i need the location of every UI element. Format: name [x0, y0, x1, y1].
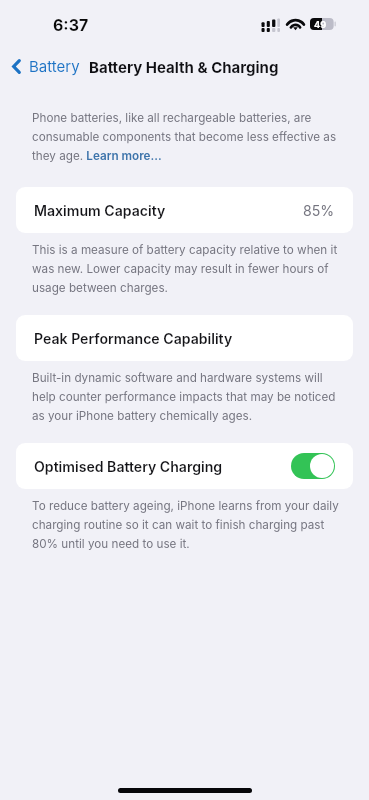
staticText: Battery Health & Charging — [89, 58, 279, 76]
staticText: Battery — [29, 57, 80, 75]
staticText: Optimised Battery Charging — [34, 458, 223, 475]
staticText: Maximum Capacity — [34, 202, 166, 219]
staticText: This is a measure of battery capacity re… — [32, 243, 345, 295]
staticText: Built-in dynamic software and hardware s… — [32, 371, 345, 423]
button[interactable]: Optimised Battery Charging — [16, 443, 353, 489]
button[interactable]: Maximum Capacity — [16, 187, 353, 233]
staticText: 85% — [303, 202, 335, 219]
button[interactable]: Battery — [8, 51, 84, 81]
staticText: Peak Performance Capability — [34, 330, 233, 347]
button[interactable]: Optimised Battery Charging toggle — [291, 453, 335, 479]
staticText: To reduce battery ageing, iPhone learns … — [32, 499, 345, 551]
staticText: 6:37 — [53, 16, 89, 35]
button[interactable]: Peak Performance Capability — [16, 315, 353, 361]
staticText: Phone batteries, like all rechargeable b… — [32, 111, 345, 163]
staticText: 49 — [314, 19, 327, 30]
